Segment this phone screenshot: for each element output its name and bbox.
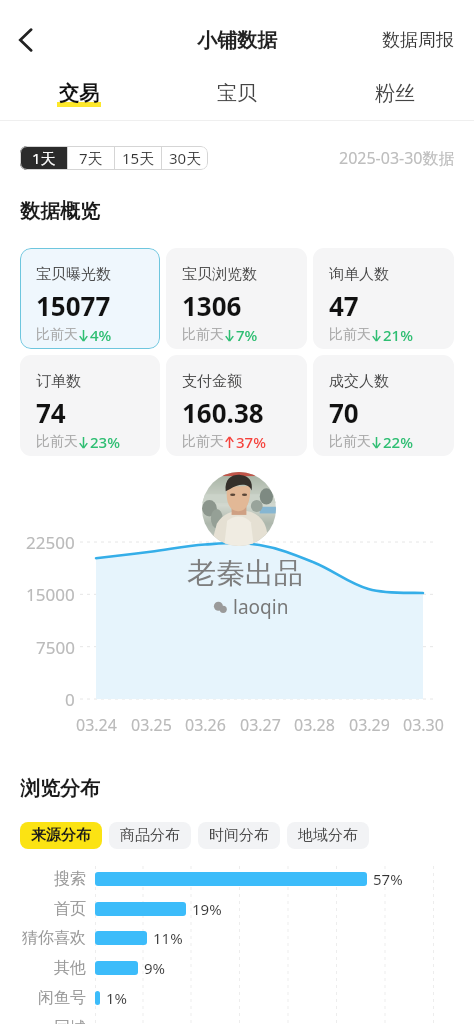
- staticText: 同城: [54, 1018, 86, 1024]
- staticText: 03.24: [76, 714, 117, 736]
- staticText: 22500: [26, 531, 75, 554]
- staticText: 宝贝浏览数: [182, 265, 257, 284]
- button[interactable]: Back: [4, 18, 48, 62]
- staticText: 57%: [373, 869, 403, 889]
- staticText: 03.27: [240, 714, 281, 736]
- staticText: 数据周报: [382, 29, 454, 52]
- staticText: 9%: [144, 958, 166, 978]
- staticText: 03.30: [403, 714, 444, 736]
- staticText: 2025-03-30数据: [339, 147, 455, 169]
- staticText: 70: [329, 395, 359, 430]
- button[interactable]: 地域分布: [287, 822, 369, 849]
- staticText: 来源分布: [31, 826, 91, 845]
- staticText: 时间分布: [209, 826, 269, 845]
- staticText: 15000: [26, 583, 75, 606]
- button[interactable]: 交易: [0, 77, 158, 109]
- staticText: 0: [65, 688, 75, 711]
- staticText: 地域分布: [298, 826, 358, 845]
- staticText: 7500: [36, 636, 75, 659]
- staticText: 19%: [192, 899, 222, 919]
- staticText: 搜索: [54, 869, 86, 889]
- staticText: 比前天: [36, 433, 78, 451]
- staticText: 比前天: [329, 433, 371, 451]
- staticText: 03.25: [131, 714, 172, 736]
- button[interactable]: 粉丝: [316, 77, 474, 109]
- staticText: 7天: [79, 148, 103, 168]
- staticText: laoqin: [233, 594, 289, 620]
- staticText: 老秦出品: [187, 555, 303, 592]
- staticText: 数据概览: [20, 199, 100, 224]
- staticText: 闲鱼号: [38, 988, 86, 1008]
- button[interactable]: 宝贝: [158, 77, 316, 109]
- staticText: 22%: [383, 432, 413, 452]
- button[interactable]: 支付金额: [166, 355, 307, 456]
- staticText: 37%: [236, 432, 266, 452]
- staticText: 其他: [54, 958, 86, 978]
- button[interactable]: 商品分布: [109, 822, 191, 849]
- staticText: 小铺数据: [197, 28, 277, 53]
- staticText: 21%: [383, 325, 413, 345]
- staticText: 订单数: [36, 372, 81, 391]
- staticText: 宝贝: [217, 81, 257, 106]
- staticText: 比前天: [182, 433, 224, 451]
- button[interactable]: 数据周报: [382, 29, 454, 52]
- staticText: 交易: [59, 81, 99, 106]
- staticText: 1306: [182, 288, 242, 323]
- staticText: 11%: [153, 928, 183, 948]
- staticText: 160.38: [182, 395, 264, 430]
- button[interactable]: 15天: [115, 146, 161, 170]
- staticText: 比前天: [329, 326, 371, 344]
- staticText: 23%: [90, 432, 120, 452]
- staticText: 商品分布: [120, 826, 180, 845]
- staticText: 74: [36, 395, 66, 430]
- button[interactable]: 1天: [20, 146, 67, 170]
- button[interactable]: 7天: [68, 146, 114, 170]
- staticText: 03.26: [185, 714, 226, 736]
- button[interactable]: 宝贝曝光数: [20, 248, 160, 349]
- staticText: 4%: [90, 325, 112, 345]
- staticText: 首页: [54, 899, 86, 919]
- staticText: 猜你喜欢: [22, 928, 86, 948]
- button[interactable]: 来源分布: [20, 822, 102, 849]
- staticText: 03.29: [349, 714, 390, 736]
- staticText: 浏览分布: [20, 776, 100, 801]
- staticText: 成交人数: [329, 372, 389, 391]
- staticText: 7%: [236, 325, 258, 345]
- button[interactable]: 订单数: [20, 355, 160, 456]
- staticText: 15天: [122, 148, 155, 168]
- staticText: 宝贝曝光数: [36, 265, 111, 284]
- staticText: 30天: [169, 148, 202, 168]
- staticText: 比前天: [36, 326, 78, 344]
- button[interactable]: 成交人数: [313, 355, 454, 456]
- staticText: 1%: [106, 988, 128, 1008]
- staticText: 47: [329, 288, 359, 323]
- button[interactable]: 30天: [162, 146, 208, 170]
- staticText: 1天: [32, 148, 56, 168]
- button[interactable]: 时间分布: [198, 822, 280, 849]
- staticText: 支付金额: [182, 372, 242, 391]
- staticText: 03.28: [294, 714, 335, 736]
- staticText: 比前天: [182, 326, 224, 344]
- button[interactable]: 询单人数: [313, 248, 454, 349]
- staticText: 15077: [36, 288, 111, 323]
- button[interactable]: 宝贝浏览数: [166, 248, 307, 349]
- staticText: 粉丝: [375, 81, 415, 106]
- staticText: 询单人数: [329, 265, 389, 284]
